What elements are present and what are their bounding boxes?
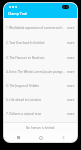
- button[interactable]: 1. Worldwide expansion of commercial int…: [4, 25, 77, 30]
- staticText: more: [67, 98, 75, 102]
- button[interactable]: 5. The Jargon of Hidden: [4, 83, 77, 88]
- staticText: 7. Delivers a natural tone: [6, 112, 65, 116]
- staticText: 3. The Flavours to Read out: [6, 56, 65, 60]
- button[interactable]: 2. Text Overload: Is Entitled: [4, 40, 77, 45]
- button[interactable]: 3. The Flavours to Read out: [4, 55, 77, 60]
- staticText: 5. The Jargon of Hidden: [6, 84, 65, 88]
- staticText: more: [67, 41, 75, 45]
- staticText: Clamp Text: [8, 11, 27, 16]
- staticText: more: [67, 26, 75, 30]
- button[interactable]: Home: [33, 133, 49, 142]
- button[interactable]: Recents: [10, 133, 26, 142]
- staticText: more: [67, 70, 75, 74]
- staticText: more: [67, 56, 75, 60]
- staticText: 2. Text Overload: Is Entitled: [6, 41, 65, 45]
- staticText: more: [67, 112, 75, 116]
- button[interactable]: 7. Delivers a natural tone: [4, 111, 77, 116]
- button[interactable]: 6. Life ahead to Lucrative: [4, 97, 77, 102]
- staticText: 4. Intro: The Whole Lorem Ipsum paragrap…: [6, 70, 65, 74]
- staticText: 6. Life ahead to Lucrative: [6, 98, 65, 102]
- staticText: No human is limited: [26, 126, 55, 130]
- button[interactable]: 4. Intro: The Whole Lorem Ipsum paragrap…: [4, 69, 77, 74]
- staticText: 1. Worldwide expansion of commercial int…: [6, 26, 65, 30]
- button[interactable]: Back: [55, 133, 71, 142]
- staticText: more: [67, 84, 75, 88]
